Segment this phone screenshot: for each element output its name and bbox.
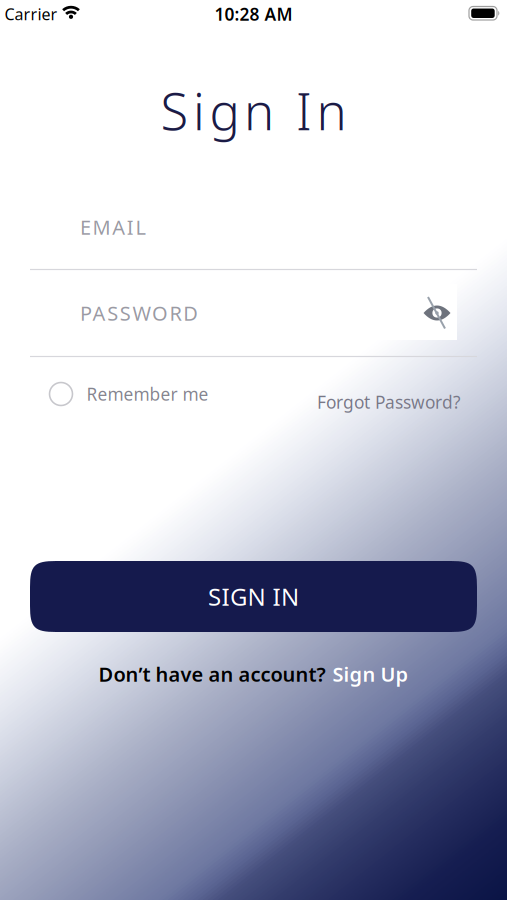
button[interactable]: Show password: [422, 296, 452, 330]
button[interactable]: SIGN IN: [30, 561, 477, 632]
staticText: EMAIL: [80, 214, 145, 240]
staticText: Sign Up: [332, 661, 408, 687]
button[interactable]: PASSWORD: [0, 300, 507, 326]
staticText: Sign In: [160, 77, 346, 144]
staticText: Carrier: [4, 3, 57, 25]
staticText: Don’t have an account?: [98, 661, 325, 687]
staticText: SIGN IN: [208, 581, 299, 612]
staticText: Remember me: [86, 382, 208, 405]
staticText: Forgot Password?: [317, 390, 461, 413]
button[interactable]: Remember me: [49, 382, 208, 405]
button[interactable]: EMAIL: [0, 214, 507, 240]
staticText: PASSWORD: [80, 300, 198, 326]
staticText: 10:28 AM: [214, 2, 292, 25]
button[interactable]: Forgot Password?: [317, 390, 461, 413]
button[interactable]: Sign Up: [332, 661, 408, 687]
